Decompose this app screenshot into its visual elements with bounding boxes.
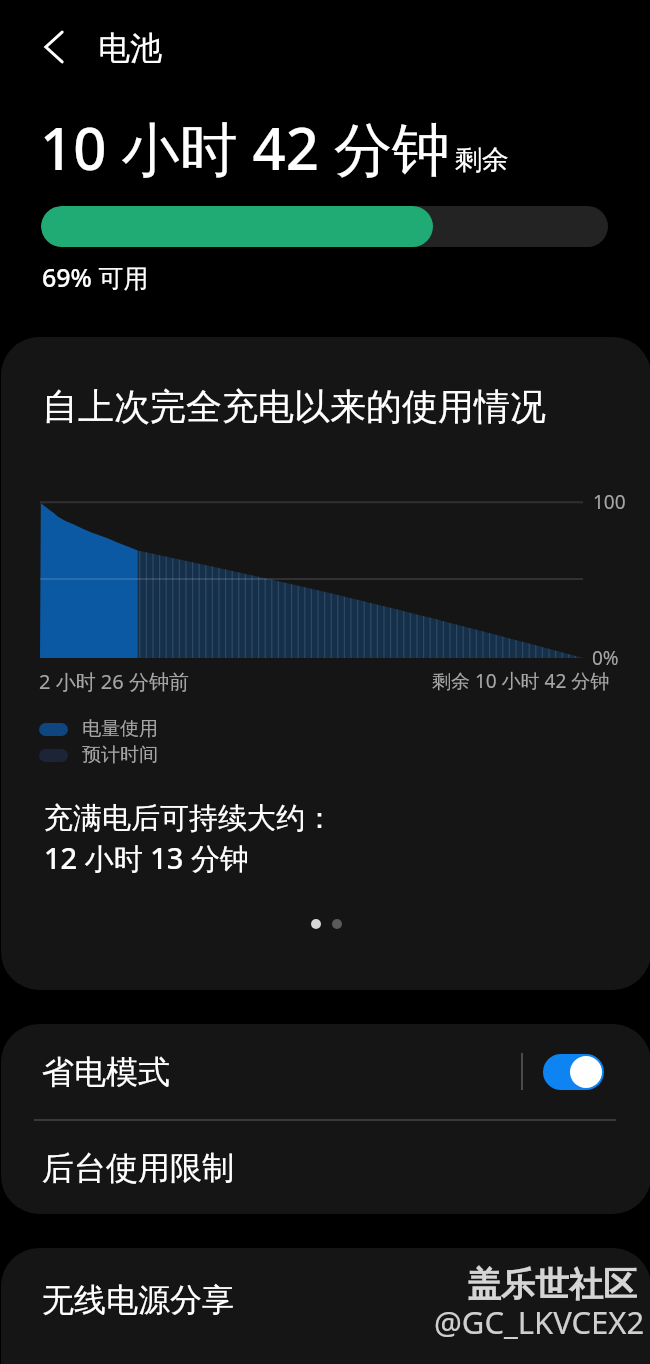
staticText: 无线电源分享	[42, 1280, 234, 1320]
button[interactable]: Power saving mode toggle	[543, 1054, 604, 1090]
staticText: 省电模式	[42, 1052, 170, 1092]
button[interactable]: 无线电源分享	[1, 1248, 650, 1351]
staticText: 69% 可用	[42, 260, 149, 294]
button[interactable]: Page 2	[332, 919, 342, 929]
staticText: 0%	[592, 645, 619, 671]
staticText: 预计时间	[82, 743, 158, 767]
staticText: 2 小时 26 分钟前	[39, 668, 189, 695]
button[interactable]: Page 1	[311, 919, 321, 929]
staticText: 100	[593, 489, 626, 515]
staticText: 充满电后可持续大约：	[44, 800, 334, 837]
staticText: 盖乐世社区	[467, 1263, 637, 1306]
button[interactable]: 省电模式	[1, 1024, 650, 1119]
staticText: 电量使用	[82, 717, 158, 741]
staticText: 电池	[98, 28, 162, 68]
staticText: 10 小时 42 分钟	[40, 108, 450, 187]
staticText: 剩余 10 小时 42 分钟	[432, 668, 610, 694]
staticText: @GC_LKVCEX2	[434, 1301, 645, 1343]
staticText: 自上次完全充电以来的使用情况	[42, 384, 546, 429]
button[interactable]: 后台使用限制	[1, 1121, 650, 1214]
button[interactable]: Back	[22, 15, 86, 79]
staticText: 剩余	[455, 143, 509, 177]
staticText: 后台使用限制	[42, 1148, 234, 1188]
staticText: 12 小时 13 分钟	[44, 838, 249, 878]
